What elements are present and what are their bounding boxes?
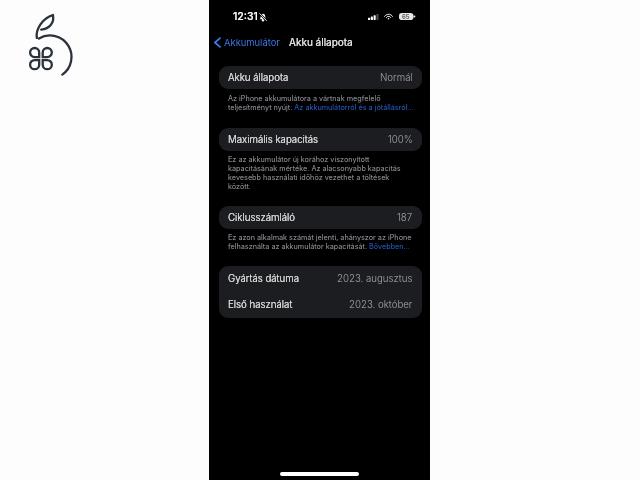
staticText: 2023. október [349,299,413,311]
staticText: Akku állapota [228,72,289,84]
other: Néma üzemmód [259,13,267,21]
button[interactable]: Maximális kapacitás [219,128,422,151]
staticText: Gyártás dátuma [228,273,299,285]
staticText: 65 [402,13,410,20]
staticText: Akku állapota [289,36,353,48]
staticText: 2023. augusztus [337,273,413,285]
staticText: Ez az akkumulátor új korához viszonyítot… [228,155,414,191]
other: Vissza [214,37,221,48]
button[interactable]: Apple logó [25,8,85,96]
staticText: Maximális kapacitás [228,134,319,146]
staticText: 100% [388,134,413,146]
staticText: 187 [397,212,413,224]
staticText: 12:31 [233,10,258,23]
staticText: Első használat [228,299,293,311]
other: Akkumulátor 65% [399,13,415,20]
button[interactable]: Akku állapota [219,66,422,89]
staticText: Akkumulátor [224,37,280,48]
staticText: Ciklusszámláló [228,212,296,224]
button[interactable]: Gyártás dátuma [219,266,422,292]
button[interactable]: Vissza [212,35,282,50]
button[interactable]: Az iPhone akkumulátora a vártnak megfele… [228,94,414,112]
button[interactable]: Ez azon alkalmak számát jelenti, ahánysz… [228,233,414,251]
button[interactable]: Első használat [219,292,422,318]
other: Wi-Fi [385,14,392,19]
button[interactable]: Ciklusszámláló [219,206,422,229]
staticText: Normál [380,72,413,84]
other: Mobilhálózat jelerőssége [368,14,379,20]
